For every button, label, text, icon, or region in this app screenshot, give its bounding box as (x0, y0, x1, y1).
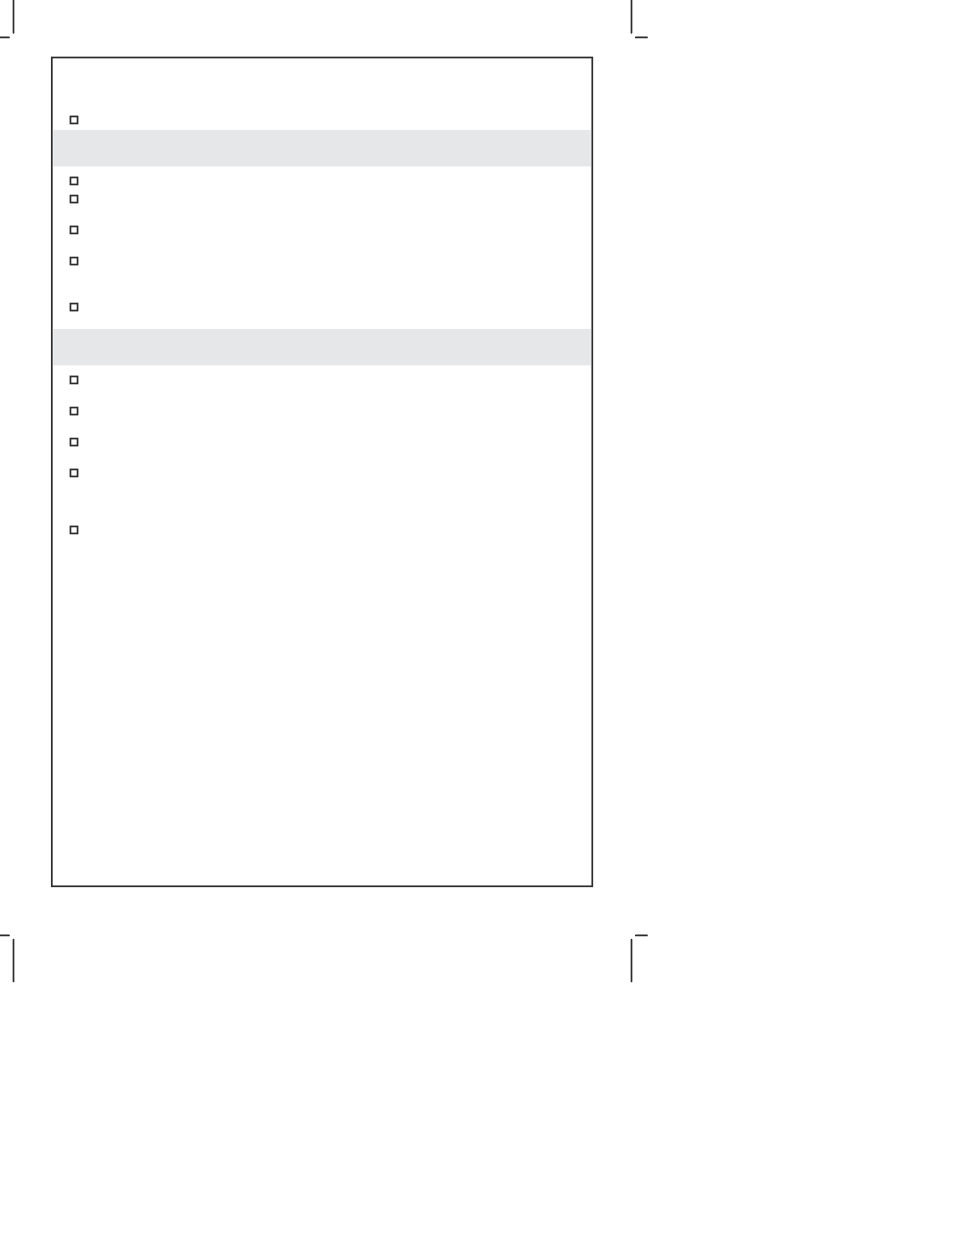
button[interactable]: List item 1 check box (53, 111, 590, 130)
button[interactable]: List item 7 check box (53, 371, 590, 390)
button[interactable]: List item 3 check box (53, 190, 590, 209)
button[interactable]: List item 5 check box (53, 252, 590, 271)
button[interactable]: List item 9 check box (53, 433, 590, 452)
button[interactable]: List item 8 check box (53, 402, 590, 421)
button[interactable]: List item 4 check box (53, 221, 590, 240)
button[interactable]: List item 10 check box (53, 464, 590, 483)
button[interactable]: List item 2 check box (53, 172, 590, 191)
button[interactable]: List item 6 check box (53, 298, 590, 317)
button[interactable]: List item 11 check box (53, 521, 590, 540)
